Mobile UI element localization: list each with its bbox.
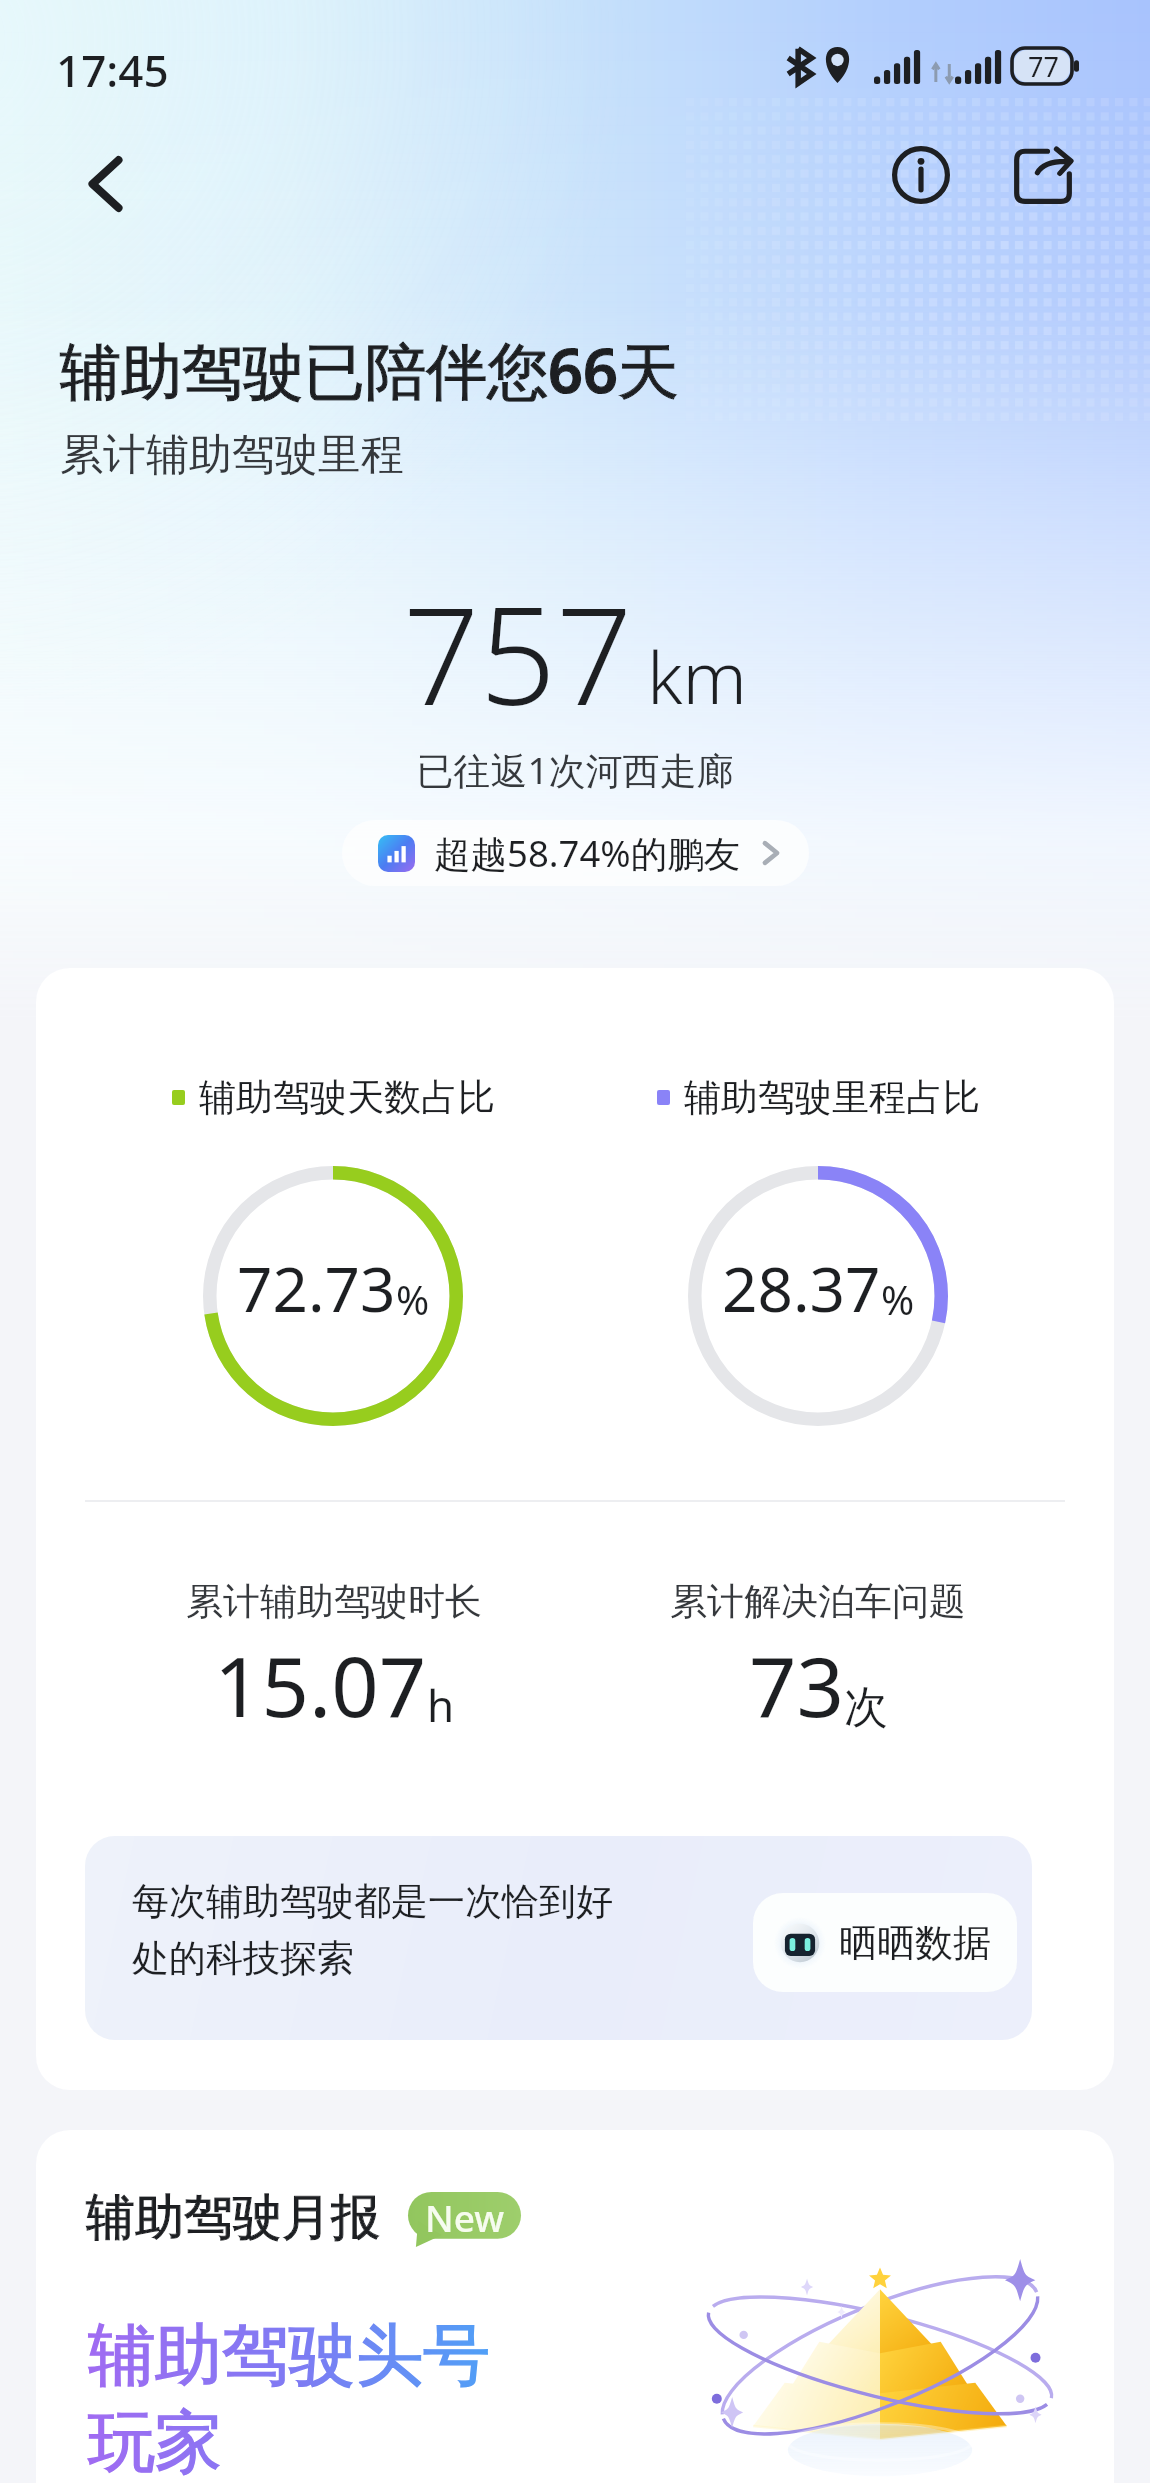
button[interactable]: Back xyxy=(60,139,150,229)
staticText: km xyxy=(647,627,747,725)
staticText: 77 xyxy=(1028,48,1059,84)
button[interactable]: Info xyxy=(876,130,966,220)
staticText: 辅助驾驶月报 xyxy=(86,2187,380,2249)
staticText: 17:45 xyxy=(56,40,169,100)
staticText: % xyxy=(881,1272,915,1326)
staticText: 73 xyxy=(749,1628,844,1741)
staticText: 辅助驾驶月报 xyxy=(86,2187,380,2249)
staticText: 晒晒数据 xyxy=(839,1919,991,1967)
button[interactable]: 晒晒数据 xyxy=(753,1893,1017,1992)
staticText: 辅助驾驶已陪伴您66天 xyxy=(60,328,679,411)
button[interactable]: Share xyxy=(998,130,1088,220)
staticText: 累计辅助驾驶里程 xyxy=(60,428,404,482)
staticText: 15.07 xyxy=(214,1628,427,1741)
staticText: h xyxy=(427,1675,455,1735)
staticText: 累计辅助驾驶时长 xyxy=(186,1578,482,1625)
staticText: 辅助驾驶头号 玩家 xyxy=(88,2313,490,2483)
button[interactable]: 超越58.74%的鹏友 xyxy=(342,820,809,886)
staticText: 次 xyxy=(844,1680,888,1735)
staticText: 72.73 xyxy=(237,1246,396,1330)
staticText: 累计解决泊车问题 xyxy=(670,1578,966,1625)
staticText: New xyxy=(408,2192,521,2242)
staticText: 28.37 xyxy=(722,1246,881,1330)
staticText: % xyxy=(396,1272,430,1326)
button[interactable]: 辅助驾驶月报 xyxy=(36,2130,1114,2483)
staticText: 超越58.74%的鹏友 xyxy=(434,828,741,878)
staticText: 辅助驾驶头号 玩家 xyxy=(88,2313,490,2483)
staticText: 已往返1次河西走廊 xyxy=(0,744,1150,795)
staticText: 辅助驾驶天数占比 xyxy=(199,1074,495,1121)
staticText: 每次辅助驾驶都是一次恰到好 处的科技探索 xyxy=(132,1878,613,1982)
staticText: 辅助驾驶里程占比 xyxy=(684,1074,980,1121)
staticText: 757 xyxy=(403,562,633,745)
staticText: 辅助驾驶已陪伴您66天 xyxy=(60,328,679,411)
